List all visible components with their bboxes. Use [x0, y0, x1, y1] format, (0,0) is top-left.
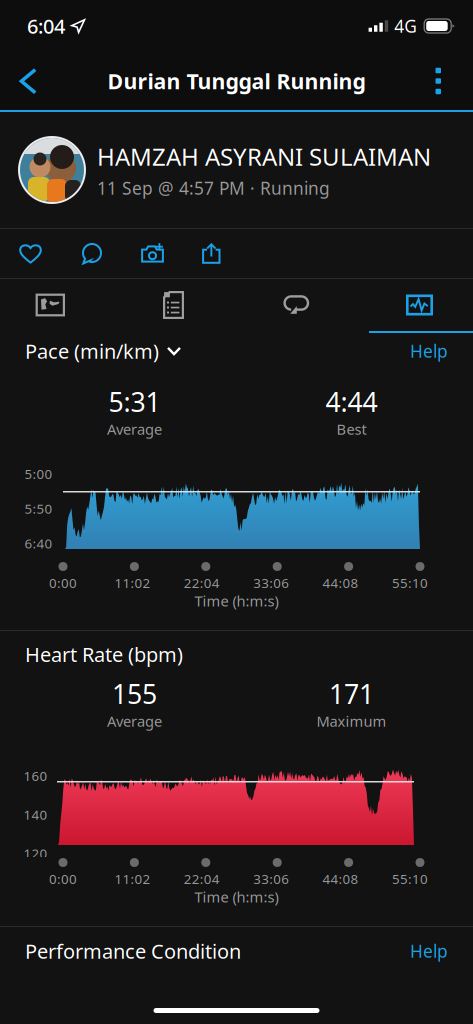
staticText: 171 — [329, 676, 374, 711]
button[interactable]: Performance Condition — [0, 927, 473, 975]
staticText: Average — [107, 711, 162, 731]
staticText: Help — [410, 339, 448, 362]
staticText: 33:06 — [253, 574, 289, 592]
button[interactable]: Charts — [358, 279, 473, 331]
button[interactable]: Details — [112, 279, 235, 331]
staticText: Pace (min/km) — [25, 338, 159, 364]
staticText: 5:00 — [24, 465, 52, 483]
staticText: 44:08 — [323, 574, 359, 592]
staticText: 4:44 — [325, 384, 377, 419]
staticText: 5:50 — [24, 500, 52, 517]
staticText: 55:10 — [392, 870, 428, 888]
staticText: 160 — [23, 767, 47, 785]
staticText: 11 Sep @ 4:57 PM · Running — [97, 176, 330, 199]
button[interactable]: Map — [0, 279, 112, 331]
staticText: 33:06 — [253, 870, 289, 888]
staticText: 44:08 — [323, 870, 359, 888]
staticText: 6:04 — [27, 13, 65, 39]
staticText: HAMZAH ASYRANI SULAIMAN — [97, 141, 431, 172]
button[interactable]: Add photo — [131, 229, 175, 278]
staticText: Performance Condition — [25, 938, 241, 964]
staticText: 11:02 — [114, 574, 150, 592]
button[interactable]: Share — [192, 228, 231, 278]
staticText: 0:00 — [49, 574, 77, 592]
button[interactable]: Comment — [71, 229, 113, 278]
staticText: 22:04 — [184, 870, 220, 888]
staticText: Best — [336, 419, 366, 439]
staticText: 120 — [23, 844, 47, 862]
button[interactable]: Laps — [235, 279, 358, 331]
staticText: 4G — [394, 14, 417, 37]
staticText: Help — [410, 939, 448, 962]
staticText: Time (h:m:s) — [194, 591, 278, 610]
staticText: 140 — [23, 806, 47, 823]
button[interactable]: Like — [9, 229, 52, 278]
staticText: 0:00 — [49, 870, 77, 888]
button[interactable]: More options — [419, 54, 473, 108]
staticText: 155 — [112, 676, 157, 711]
button[interactable]: Help — [385, 336, 473, 366]
staticText: Maximum — [316, 711, 386, 731]
staticText: 11:02 — [114, 870, 150, 888]
staticText: 5:31 — [108, 384, 160, 419]
staticText: Time (h:m:s) — [194, 887, 278, 906]
staticText: Average — [107, 419, 162, 439]
staticText: Heart Rate (bpm) — [25, 641, 183, 668]
staticText: 55:10 — [392, 574, 428, 592]
staticText: 22:04 — [184, 574, 220, 592]
button[interactable]: Back — [0, 54, 51, 108]
staticText: Durian Tunggal Running — [107, 67, 365, 95]
staticText: 6:40 — [24, 534, 52, 552]
button[interactable]: Pace (min/km) — [0, 336, 193, 366]
